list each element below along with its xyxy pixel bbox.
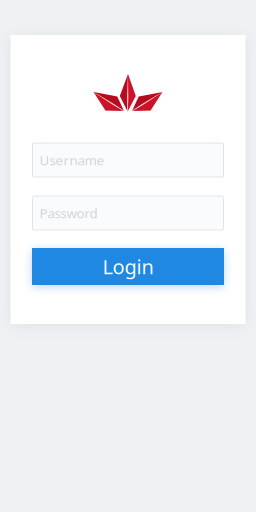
button[interactable]: Password: [32, 196, 223, 230]
button[interactable]: Username: [32, 143, 223, 177]
button[interactable]: Login: [32, 248, 224, 285]
staticText: Password: [39, 204, 97, 222]
staticText: Username: [39, 151, 104, 169]
staticText: Login: [102, 253, 153, 280]
